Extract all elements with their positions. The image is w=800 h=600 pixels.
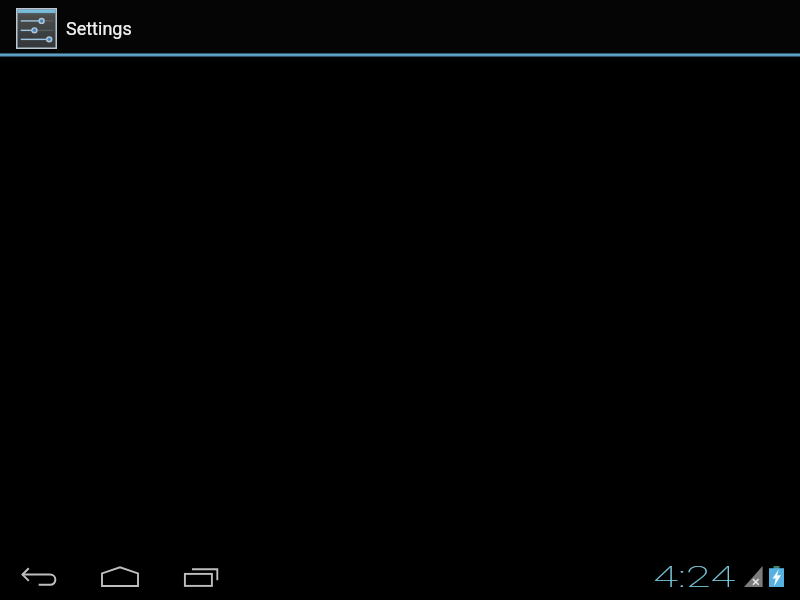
button[interactable]: Settings	[0, 0, 800, 56]
button[interactable]: 4:24	[654, 559, 784, 593]
staticText: 4:24	[653, 559, 736, 593]
staticText: Settings	[66, 18, 132, 39]
button[interactable]: Settings	[16, 8, 57, 49]
button[interactable]: Home	[80, 561, 144, 600]
button[interactable]: Recent apps	[160, 561, 224, 600]
button[interactable]: Back	[0, 561, 64, 600]
